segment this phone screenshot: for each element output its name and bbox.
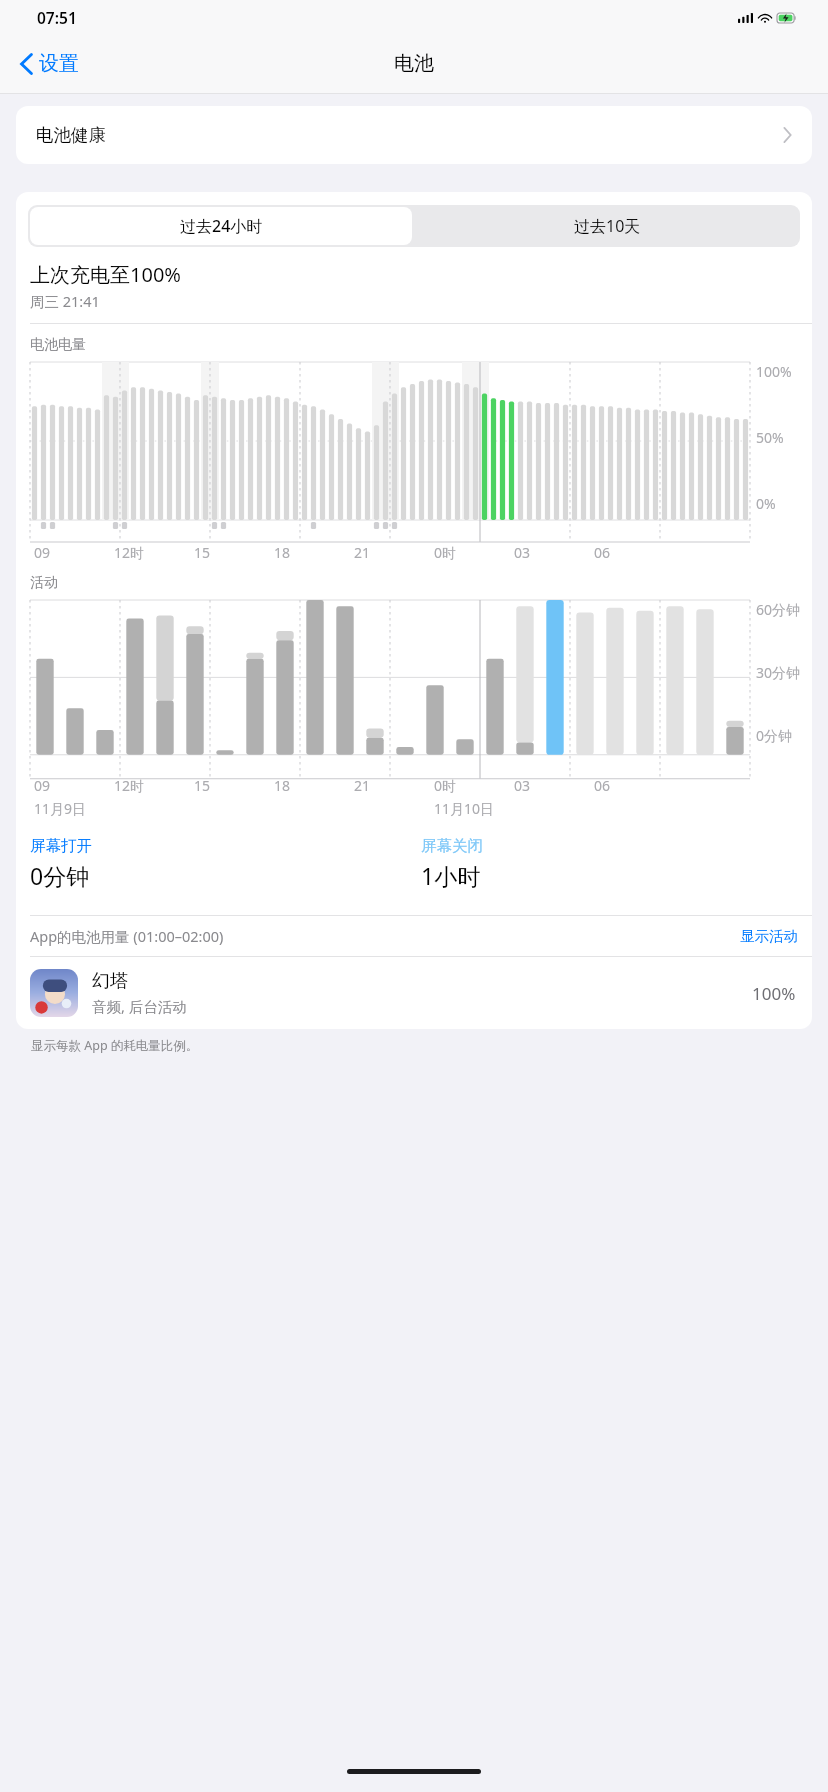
staticText: App的电池用量 (01:00–02:00) [30,926,224,946]
staticText: 0分钟 [756,726,793,745]
staticText: 18 [274,543,291,562]
button[interactable]: 幻塔 [16,957,812,1029]
staticText: 电池 [394,51,434,76]
staticText: 07:51 [37,7,77,28]
staticText: 上次充电至100% [30,261,181,288]
staticText: 100% [752,982,796,1005]
staticText: 0分钟 [30,860,90,891]
staticText: 0时 [434,776,457,795]
staticText: 显示活动 [740,927,798,945]
staticText: 15 [194,776,211,795]
staticText: 60分钟 [756,600,801,619]
staticText: 12时 [114,776,145,795]
staticText: 11月10日 [434,799,495,818]
staticText: 06 [594,543,611,562]
staticText: 屏幕打开 [30,836,92,856]
staticText: 21 [354,543,371,562]
staticText: 屏幕关闭 [421,836,483,856]
staticText: 09 [34,776,51,795]
staticText: 100% [756,362,792,381]
staticText: 过去10天 [574,215,641,237]
staticText: 11月9日 [34,799,87,818]
staticText: 15 [194,543,211,562]
button[interactable]: 过去10天 [414,205,800,247]
staticText: 音频, 后台活动 [92,996,187,1016]
staticText: 幻塔 [92,970,128,993]
staticText: 0时 [434,543,457,562]
staticText: 21 [354,776,371,795]
button[interactable]: 电池健康 [16,106,812,164]
staticText: 12时 [114,543,145,562]
staticText: 0% [756,494,776,513]
staticText: 活动 [30,574,58,592]
staticText: 03 [514,776,531,795]
staticText: 50% [756,428,784,447]
staticText: 显示每款 App 的耗电量比例。 [31,1037,199,1054]
button[interactable]: 显示活动 [740,927,798,945]
staticText: 18 [274,776,291,795]
staticText: 09 [34,543,51,562]
staticText: 1小时 [421,860,481,891]
staticText: 03 [514,543,531,562]
button[interactable]: 设置 [0,43,89,84]
staticText: 周三 21:41 [30,291,100,311]
staticText: 电池健康 [36,124,106,146]
staticText: 过去24小时 [180,215,263,237]
staticText: 30分钟 [756,663,801,682]
button[interactable]: 过去24小时 [30,207,412,245]
staticText: 电池电量 [30,336,86,354]
staticText: 06 [594,776,611,795]
staticText: 设置 [39,51,79,76]
